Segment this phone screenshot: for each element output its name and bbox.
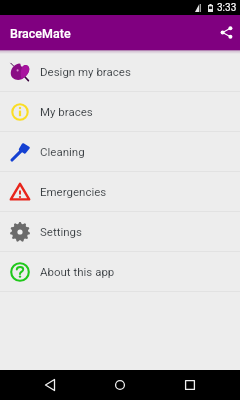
staticText: About this app (40, 265, 115, 278)
button[interactable]: Settings (0, 212, 240, 251)
staticText: Settings (40, 225, 82, 238)
button[interactable]: Design my braces (0, 52, 240, 91)
button[interactable]: Back (35, 370, 65, 400)
button[interactable]: Cleaning (0, 132, 240, 171)
button[interactable]: Share (205, 15, 240, 50)
staticText: Design my braces (40, 65, 131, 78)
staticText: My braces (40, 105, 93, 118)
button[interactable]: My braces (0, 92, 240, 131)
staticText: Cleaning (40, 145, 85, 158)
staticText: 3:33 (217, 2, 237, 14)
staticText: BraceMate (10, 26, 71, 41)
button[interactable]: Emergencies (0, 172, 240, 211)
button[interactable]: Home (105, 370, 135, 400)
button[interactable]: Recents (175, 370, 205, 400)
button[interactable]: About this app (0, 252, 240, 291)
staticText: Emergencies (40, 185, 107, 198)
